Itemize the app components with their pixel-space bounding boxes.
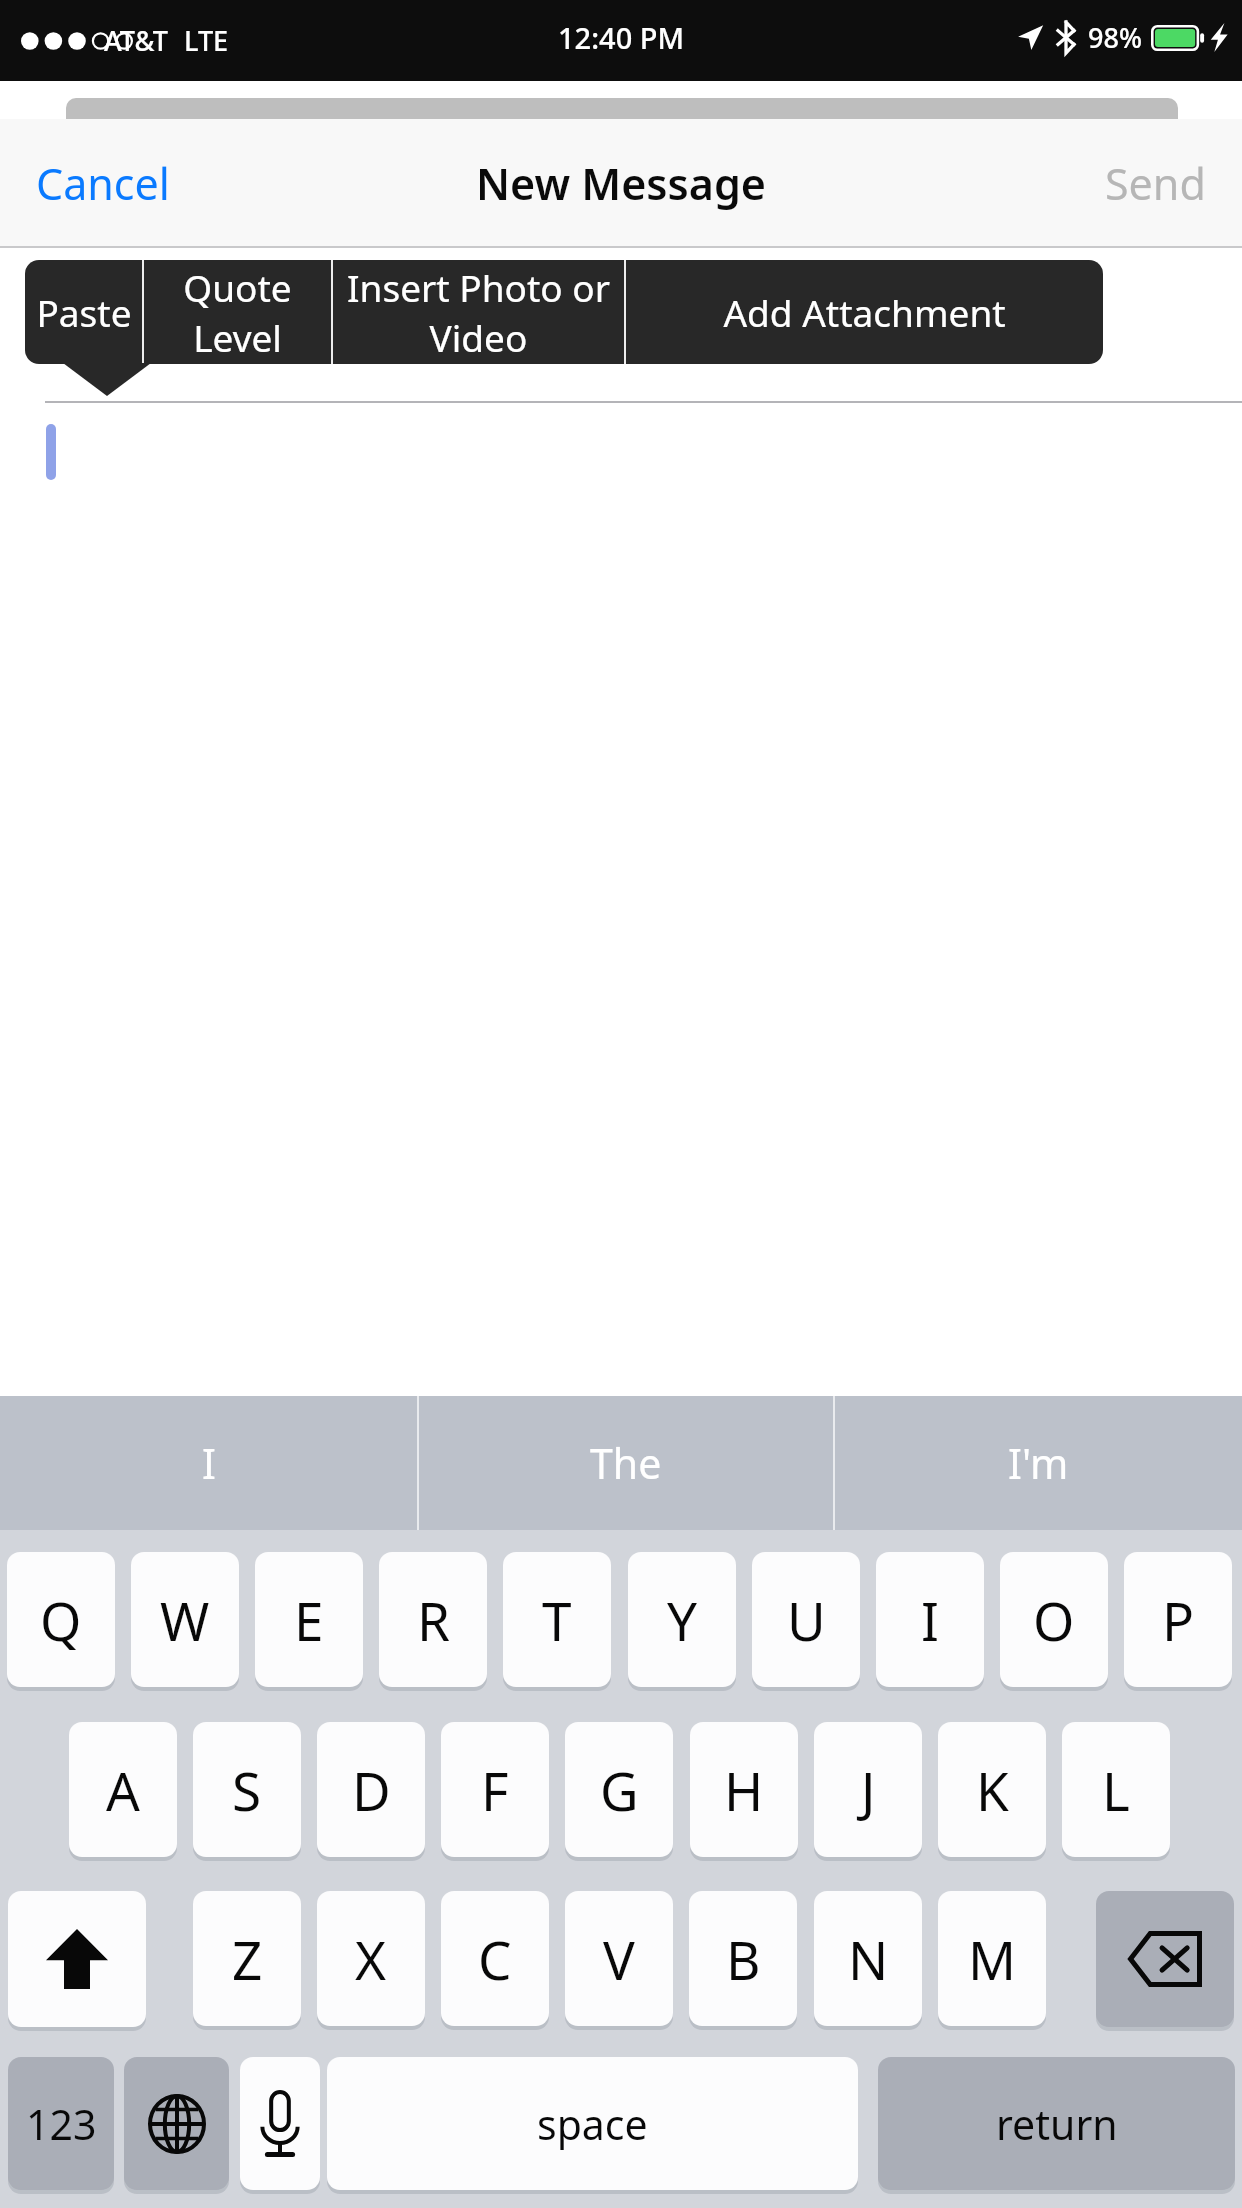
button[interactable]: Dictate <box>240 2057 320 2190</box>
staticText: 12:40 PM <box>558 18 685 57</box>
staticText: LTE <box>184 22 229 59</box>
button[interactable]: T <box>503 1552 611 1687</box>
button[interactable]: C <box>441 1891 549 2026</box>
staticText: E <box>294 1584 324 1656</box>
staticText: P <box>1162 1584 1195 1656</box>
button[interactable]: Send <box>1069 132 1242 235</box>
staticText: I'm <box>1008 1435 1069 1491</box>
button[interactable]: A <box>69 1722 177 1857</box>
staticText: Cancel <box>36 154 170 213</box>
staticText: N <box>848 1923 889 1995</box>
staticText: V <box>603 1923 635 1995</box>
staticText: L <box>1102 1754 1130 1826</box>
staticText: A <box>106 1754 140 1826</box>
staticText: Quote Level <box>144 262 331 362</box>
button[interactable]: return <box>878 2057 1235 2190</box>
button[interactable]: X <box>317 1891 425 2026</box>
button[interactable]: Paste <box>25 260 142 364</box>
button[interactable]: K <box>938 1722 1046 1857</box>
staticText: F <box>481 1754 509 1826</box>
button[interactable]: V <box>565 1891 673 2026</box>
button[interactable]: Quote Level <box>144 260 331 364</box>
button[interactable]: U <box>752 1552 860 1687</box>
staticText: M <box>968 1923 1017 1995</box>
button[interactable]: L <box>1062 1722 1170 1857</box>
staticText: U <box>787 1584 826 1656</box>
staticText: return <box>996 2096 1118 2152</box>
button[interactable]: B <box>689 1891 797 2026</box>
staticText: The <box>590 1435 662 1491</box>
button[interactable]: Next keyboard <box>124 2057 229 2190</box>
staticText: J <box>861 1754 876 1826</box>
button[interactable]: M <box>938 1891 1046 2026</box>
staticText: B <box>726 1923 761 1995</box>
staticText: Add Attachment <box>723 287 1006 337</box>
staticText: Insert Photo or Video <box>333 262 624 362</box>
button[interactable]: O <box>1000 1552 1108 1687</box>
button[interactable]: Z <box>193 1891 301 2026</box>
button[interactable]: E <box>255 1552 363 1687</box>
button[interactable]: Delete <box>1096 1891 1234 2027</box>
button[interactable]: I <box>0 1396 417 1530</box>
button[interactable]: Cancel <box>0 132 206 235</box>
button[interactable]: H <box>690 1722 798 1857</box>
staticText: I <box>202 1435 216 1491</box>
staticText: Y <box>667 1584 697 1656</box>
staticText: T <box>542 1584 572 1656</box>
staticText: New Message <box>476 154 766 213</box>
button[interactable]: J <box>814 1722 922 1857</box>
staticText: Send <box>1105 154 1206 213</box>
button[interactable]: R <box>379 1552 487 1687</box>
button[interactable]: Insert Photo or Video <box>333 260 624 364</box>
staticText: D <box>352 1754 391 1826</box>
button[interactable]: I'm <box>835 1396 1242 1530</box>
button[interactable]: Y <box>628 1552 736 1687</box>
button[interactable]: I <box>876 1552 984 1687</box>
staticText: X <box>355 1923 387 1995</box>
staticText: Z <box>232 1923 263 1995</box>
button[interactable]: space <box>327 2057 858 2190</box>
button[interactable]: P <box>1124 1552 1232 1687</box>
button[interactable]: G <box>565 1722 673 1857</box>
staticText: Paste <box>36 287 132 337</box>
staticText: R <box>417 1584 450 1656</box>
button[interactable]: N <box>814 1891 922 2026</box>
staticText: G <box>600 1754 639 1826</box>
button[interactable]: Shift <box>8 1891 146 2027</box>
staticText: 98% <box>1088 19 1142 56</box>
staticText: AT&T <box>104 22 168 59</box>
button[interactable]: Q <box>7 1552 115 1687</box>
button[interactable]: Add Attachment <box>626 260 1103 364</box>
staticText: I <box>921 1584 939 1656</box>
button[interactable]: S <box>193 1722 301 1857</box>
staticText: H <box>724 1754 764 1826</box>
button[interactable]: F <box>441 1722 549 1857</box>
staticText: Q <box>40 1584 82 1656</box>
staticText: C <box>478 1923 512 1995</box>
staticText: W <box>160 1584 210 1656</box>
staticText: O <box>1033 1584 1075 1656</box>
button[interactable]: D <box>317 1722 425 1857</box>
staticText: S <box>232 1754 262 1826</box>
staticText: K <box>976 1754 1009 1826</box>
button[interactable]: The <box>419 1396 833 1530</box>
staticText: 123 <box>26 2096 97 2152</box>
button[interactable]: Numbers <box>8 2057 114 2190</box>
staticText: space <box>537 2096 648 2152</box>
button[interactable]: W <box>131 1552 239 1687</box>
